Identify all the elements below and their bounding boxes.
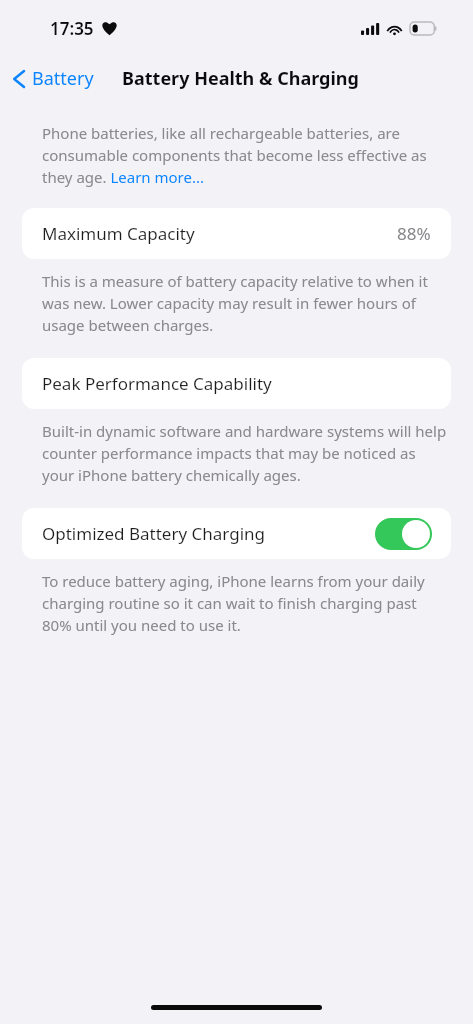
button[interactable]: Optimized Battery Charging toggle — [375, 518, 432, 550]
staticText: 88% — [397, 222, 431, 245]
staticText: Battery — [32, 66, 94, 91]
staticText: Battery Health & Charging — [122, 66, 359, 91]
staticText: Peak Performance Capability — [42, 372, 431, 395]
button[interactable]: Optimized Battery Charging — [22, 508, 451, 559]
button[interactable]: Maximum Capacity — [22, 208, 451, 259]
staticText: Phone batteries, like all rechargeable b… — [42, 123, 433, 188]
staticText: Maximum Capacity — [42, 222, 397, 245]
staticText: 17:35 — [50, 17, 94, 40]
staticText: This is a measure of battery capacity re… — [42, 271, 445, 336]
staticText: To reduce battery aging, iPhone learns f… — [42, 571, 437, 636]
button[interactable]: Battery — [10, 62, 100, 95]
staticText: Built-in dynamic software and hardware s… — [42, 421, 449, 486]
staticText: Optimized Battery Charging — [42, 522, 375, 545]
button[interactable]: Peak Performance Capability — [22, 358, 451, 409]
